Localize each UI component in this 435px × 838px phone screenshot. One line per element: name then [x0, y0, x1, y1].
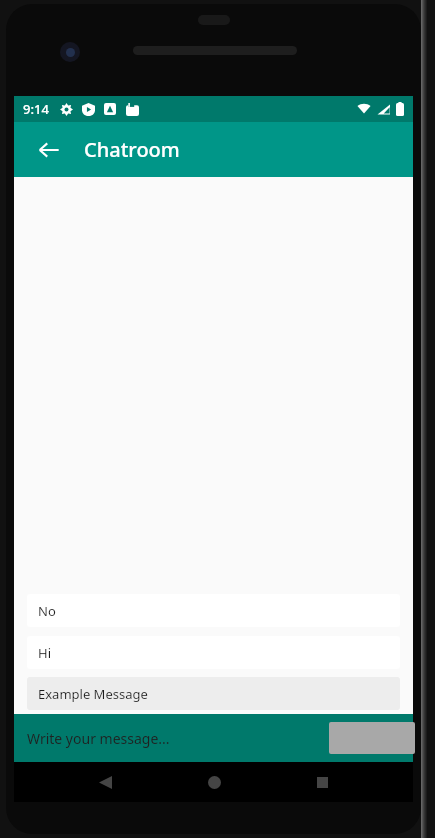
staticText: Hi	[38, 644, 51, 662]
staticText: No	[38, 602, 56, 620]
button[interactable]: Send	[329, 722, 415, 754]
button[interactable]: Example Message	[27, 677, 400, 710]
button[interactable]: Back	[87, 764, 123, 800]
button[interactable]: No	[27, 594, 400, 627]
button[interactable]: Back	[28, 129, 70, 171]
staticText: Write your message...	[27, 729, 170, 748]
staticText: Example Message	[38, 685, 148, 703]
staticText: 9:14	[23, 100, 49, 118]
button[interactable]: Write your message...	[27, 718, 317, 758]
button[interactable]: Hi	[27, 636, 400, 669]
button[interactable]: Recent apps	[304, 764, 340, 800]
staticText: Chatroom	[84, 136, 180, 163]
button[interactable]: Home	[196, 764, 232, 800]
